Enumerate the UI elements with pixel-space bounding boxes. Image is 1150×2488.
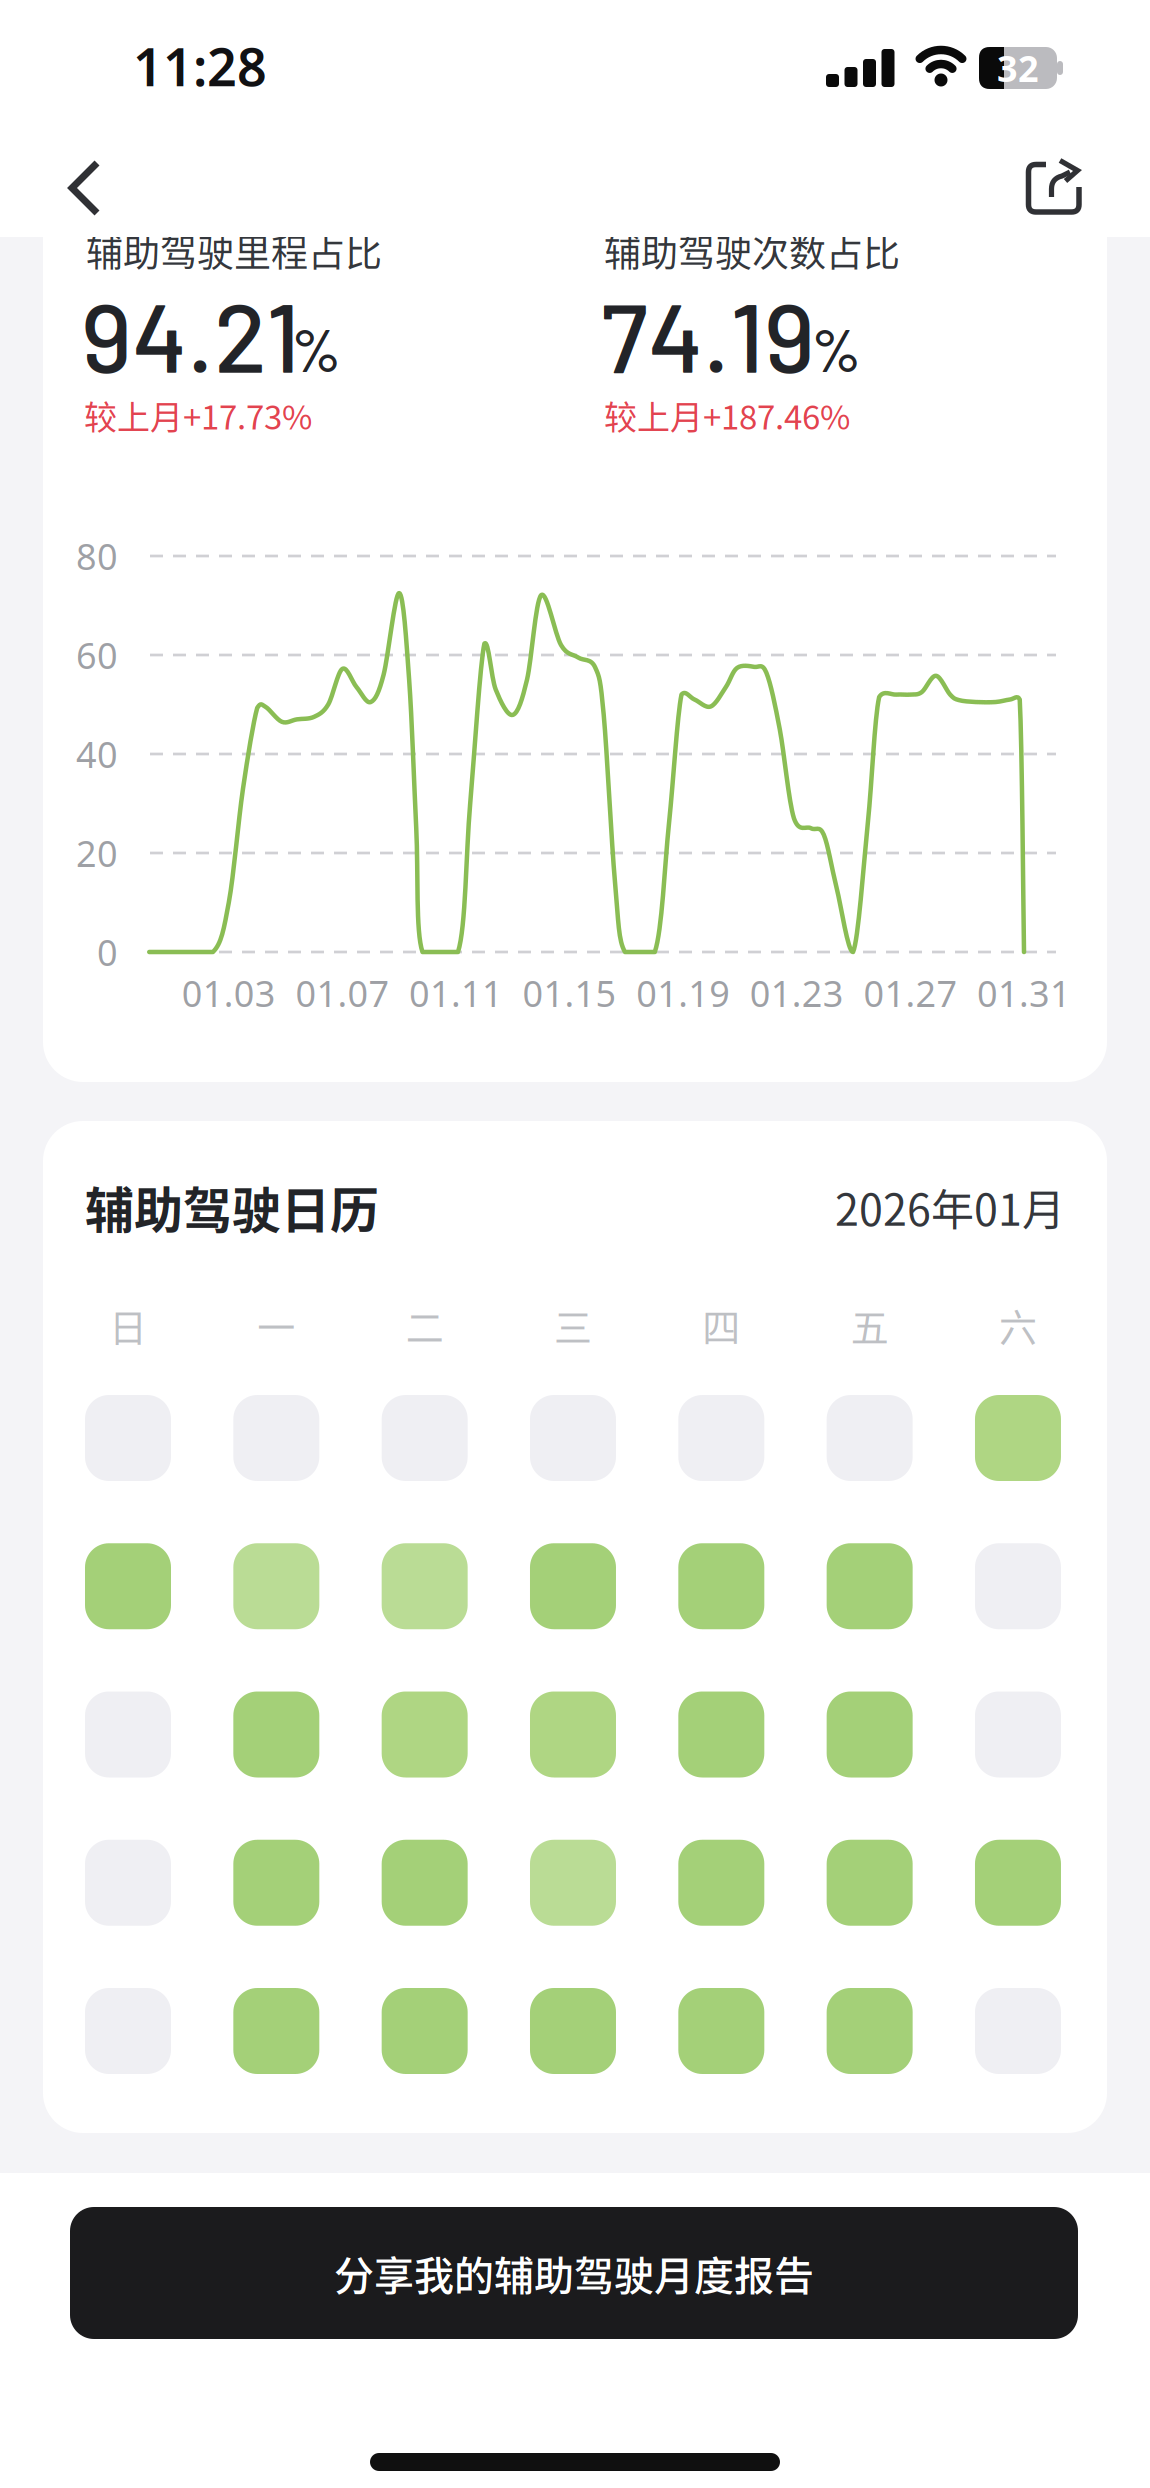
staticText: 三 xyxy=(554,1297,592,1352)
button[interactable]: Share xyxy=(1017,151,1089,223)
staticText: 01.11 xyxy=(409,968,503,1017)
staticText: 01.23 xyxy=(750,968,844,1017)
staticText: 40 xyxy=(76,729,118,778)
staticText: 四 xyxy=(702,1297,740,1352)
staticText: 一 xyxy=(257,1297,295,1352)
staticText: 六 xyxy=(999,1297,1037,1352)
staticText: 74.19 xyxy=(601,276,815,392)
staticText: 0 xyxy=(97,927,118,976)
staticText: 60 xyxy=(76,630,118,679)
button[interactable]: 分享我的辅助驾驶月度报告 xyxy=(70,2207,1078,2339)
staticText: 01.15 xyxy=(523,968,617,1017)
staticText: 01.19 xyxy=(636,968,730,1017)
staticText: 01.31 xyxy=(977,968,1071,1017)
staticText: 01.03 xyxy=(182,968,276,1017)
button[interactable]: Back xyxy=(54,148,118,228)
staticText: 二 xyxy=(406,1297,444,1352)
staticText: 2026年01月 xyxy=(835,1176,1065,1238)
staticText: 11:28 xyxy=(133,31,267,101)
staticText: 较上月+17.73% xyxy=(84,391,312,439)
staticText: 32 xyxy=(997,43,1039,92)
staticText: 20 xyxy=(76,828,118,877)
staticText: 01.07 xyxy=(295,968,389,1017)
staticText: 94.21 xyxy=(81,276,300,392)
staticText: 辅助驾驶日历 xyxy=(85,1171,379,1242)
staticText: % xyxy=(291,312,341,384)
staticText: 01.27 xyxy=(863,968,957,1017)
staticText: 辅助驾驶里程占比 xyxy=(86,224,382,277)
staticText: % xyxy=(811,312,861,384)
staticText: 80 xyxy=(76,531,118,580)
staticText: 五 xyxy=(851,1297,889,1352)
staticText: 较上月+187.46% xyxy=(604,391,850,439)
staticText: 日 xyxy=(109,1297,147,1352)
staticText: 辅助驾驶次数占比 xyxy=(604,224,900,277)
staticText: 分享我的辅助驾驶月度报告 xyxy=(334,2244,814,2302)
